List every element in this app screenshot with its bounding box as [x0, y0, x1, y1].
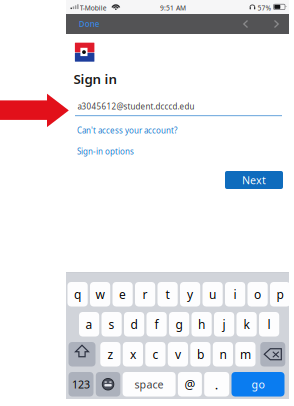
button[interactable]: q — [67, 282, 88, 306]
button[interactable]: go — [231, 372, 284, 396]
staticText: v — [175, 346, 181, 362]
staticText: i — [234, 286, 237, 302]
staticText: p — [277, 286, 284, 302]
staticText: j — [223, 316, 226, 332]
button[interactable]: Done — [74, 14, 104, 34]
staticText: f — [155, 316, 159, 332]
button[interactable]: o — [247, 282, 268, 306]
staticText: w — [96, 286, 105, 302]
staticText: a3045612@student.dcccd.edu — [77, 101, 194, 112]
button[interactable]: k — [236, 312, 257, 336]
button[interactable]: space — [123, 372, 176, 396]
staticText: h — [198, 316, 205, 332]
staticText: z — [107, 346, 113, 362]
button[interactable]: l — [259, 312, 279, 336]
staticText: x — [130, 346, 136, 362]
staticText: Sign in — [73, 70, 117, 88]
button[interactable]: . — [204, 372, 229, 396]
button[interactable]: a — [79, 312, 99, 336]
button[interactable]: r — [135, 282, 155, 306]
staticText: d — [131, 316, 138, 332]
staticText: Can't access your account? — [77, 125, 177, 136]
button[interactable]: m — [235, 342, 255, 366]
staticText: space — [135, 377, 164, 391]
staticText: Sign-in options — [77, 146, 134, 157]
button[interactable]: Delete — [260, 342, 285, 366]
staticText: q — [74, 286, 81, 302]
button[interactable]: x — [123, 342, 143, 366]
button[interactable]: h — [191, 312, 212, 336]
staticText: 123 — [72, 377, 90, 391]
staticText: Done — [79, 19, 100, 29]
button[interactable]: e — [112, 282, 133, 306]
staticText: 9:51 AM — [160, 3, 186, 12]
button[interactable]: p — [270, 282, 290, 306]
staticText: m — [240, 346, 251, 362]
staticText: go — [251, 377, 264, 391]
button[interactable]: @ — [178, 372, 202, 396]
button[interactable]: Next — [225, 171, 283, 189]
button[interactable]: j — [214, 312, 234, 336]
button[interactable]: Sign-in options — [77, 146, 134, 157]
button[interactable]: Emoji — [96, 372, 120, 396]
staticText: b — [197, 346, 204, 362]
button[interactable]: i — [225, 282, 245, 306]
button[interactable]: n — [213, 342, 233, 366]
staticText: y — [187, 286, 193, 302]
staticText: r — [143, 286, 148, 302]
button[interactable]: f — [146, 312, 167, 336]
button[interactable]: y — [180, 282, 200, 306]
button[interactable]: u — [202, 282, 223, 306]
button[interactable]: d — [124, 312, 144, 336]
staticText: o — [254, 286, 261, 302]
staticText: k — [244, 316, 250, 332]
button[interactable]: 123 — [68, 372, 93, 396]
staticText: 57% — [257, 3, 271, 12]
staticText: a — [86, 316, 93, 332]
staticText: @ — [184, 376, 195, 392]
staticText: n — [219, 346, 226, 362]
staticText: T-Mobile — [80, 3, 107, 12]
button[interactable]: z — [100, 342, 120, 366]
button[interactable]: Shift — [68, 342, 95, 366]
button[interactable]: t — [157, 282, 178, 306]
button[interactable]: s — [101, 312, 122, 336]
staticText: u — [209, 286, 216, 302]
staticText: t — [166, 286, 170, 302]
button[interactable]: v — [168, 342, 188, 366]
button[interactable]: g — [169, 312, 189, 336]
button[interactable]: Forward — [272, 19, 280, 29]
button[interactable]: c — [145, 342, 165, 366]
button[interactable]: Can't access your account? — [77, 125, 177, 136]
button[interactable]: Back — [242, 19, 250, 29]
staticText: . — [215, 375, 219, 393]
staticText: c — [152, 346, 158, 362]
staticText: l — [268, 316, 271, 332]
staticText: e — [119, 286, 126, 302]
staticText: g — [176, 316, 183, 332]
button[interactable]: b — [190, 342, 210, 366]
staticText: s — [109, 316, 115, 332]
button[interactable]: w — [90, 282, 110, 306]
staticText: Next — [242, 173, 266, 187]
